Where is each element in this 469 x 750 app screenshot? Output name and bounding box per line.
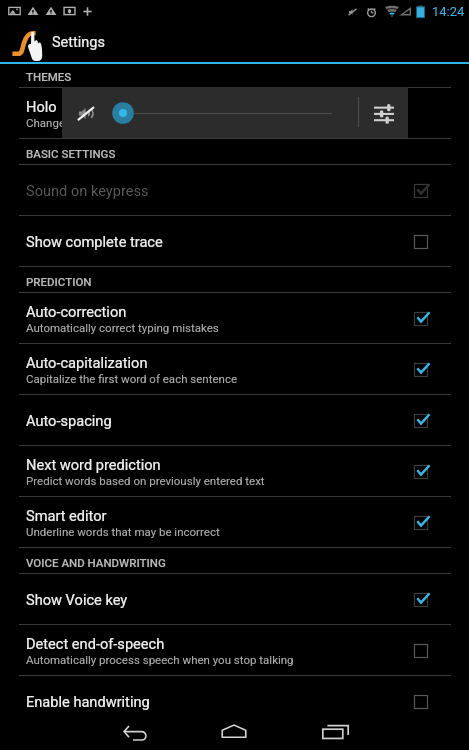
staticText: Underline words that may be incorrect xyxy=(26,525,220,538)
staticText: BASIC SETTINGS xyxy=(26,147,116,160)
staticText: Next word prediction xyxy=(26,456,161,473)
button[interactable]: Holo xyxy=(0,88,469,139)
button[interactable]: Back xyxy=(105,710,165,750)
button[interactable]: Enable handwriting xyxy=(0,676,469,727)
button[interactable]: Detect end-of-speech xyxy=(405,635,437,667)
button[interactable]: Auto-spacing xyxy=(405,405,437,437)
button[interactable]: Next word prediction xyxy=(405,456,437,488)
staticText: Auto-capitalization xyxy=(26,354,148,371)
button[interactable]: Auto-spacing xyxy=(0,395,469,446)
staticText: 14:24 xyxy=(432,4,465,19)
staticText: Show complete trace xyxy=(26,233,163,250)
staticText: Detect end-of-speech xyxy=(26,635,165,652)
button[interactable]: Show Voice key xyxy=(405,584,437,616)
staticText: Capitalize the first word of each senten… xyxy=(26,372,238,385)
button[interactable]: Enable handwriting xyxy=(405,686,437,718)
button[interactable]: Mute xyxy=(68,95,104,131)
button[interactable]: Sound settings xyxy=(367,97,401,131)
staticText: Automatically correct typing mistakes xyxy=(26,321,219,334)
staticText: Automatically process speech when you st… xyxy=(26,653,294,666)
button[interactable]: Sound on keypress xyxy=(0,165,469,216)
button[interactable]: Show complete trace xyxy=(405,226,437,258)
staticText: Holo xyxy=(26,98,57,115)
button[interactable]: Smart editor xyxy=(405,507,437,539)
button[interactable]: Settings xyxy=(0,22,469,62)
button[interactable]: Auto-correction xyxy=(405,303,437,335)
button[interactable]: Sound on keypress xyxy=(405,175,437,207)
button[interactable]: Smart editor xyxy=(0,497,469,548)
staticText: Show Voice key xyxy=(26,591,128,608)
staticText: Smart editor xyxy=(26,507,107,524)
button[interactable]: Next word prediction xyxy=(0,446,469,497)
staticText: Auto-correction xyxy=(26,303,127,320)
button[interactable]: Auto-correction xyxy=(0,293,469,344)
staticText: Predict words based on previously entere… xyxy=(26,474,265,487)
button[interactable]: Show Voice key xyxy=(0,574,469,625)
staticText: Auto-spacing xyxy=(26,412,112,429)
staticText: PREDICTION xyxy=(26,275,92,288)
staticText: VOICE AND HANDWRITING xyxy=(26,556,166,569)
button[interactable]: Show complete trace xyxy=(0,216,469,267)
button[interactable]: Auto-capitalization xyxy=(0,344,469,395)
staticText: Enable handwriting xyxy=(26,693,150,710)
button[interactable]: Auto-capitalization xyxy=(405,354,437,386)
staticText: Change the look of your keyboard xyxy=(26,116,197,129)
staticText: Settings xyxy=(52,34,105,51)
button[interactable]: Recents xyxy=(303,710,363,750)
staticText: THEMES xyxy=(26,70,72,83)
button[interactable]: Home xyxy=(204,710,264,750)
button[interactable]: Detect end-of-speech xyxy=(0,625,469,676)
staticText: Sound on keypress xyxy=(26,182,149,199)
button[interactable]: Volume xyxy=(110,100,136,126)
